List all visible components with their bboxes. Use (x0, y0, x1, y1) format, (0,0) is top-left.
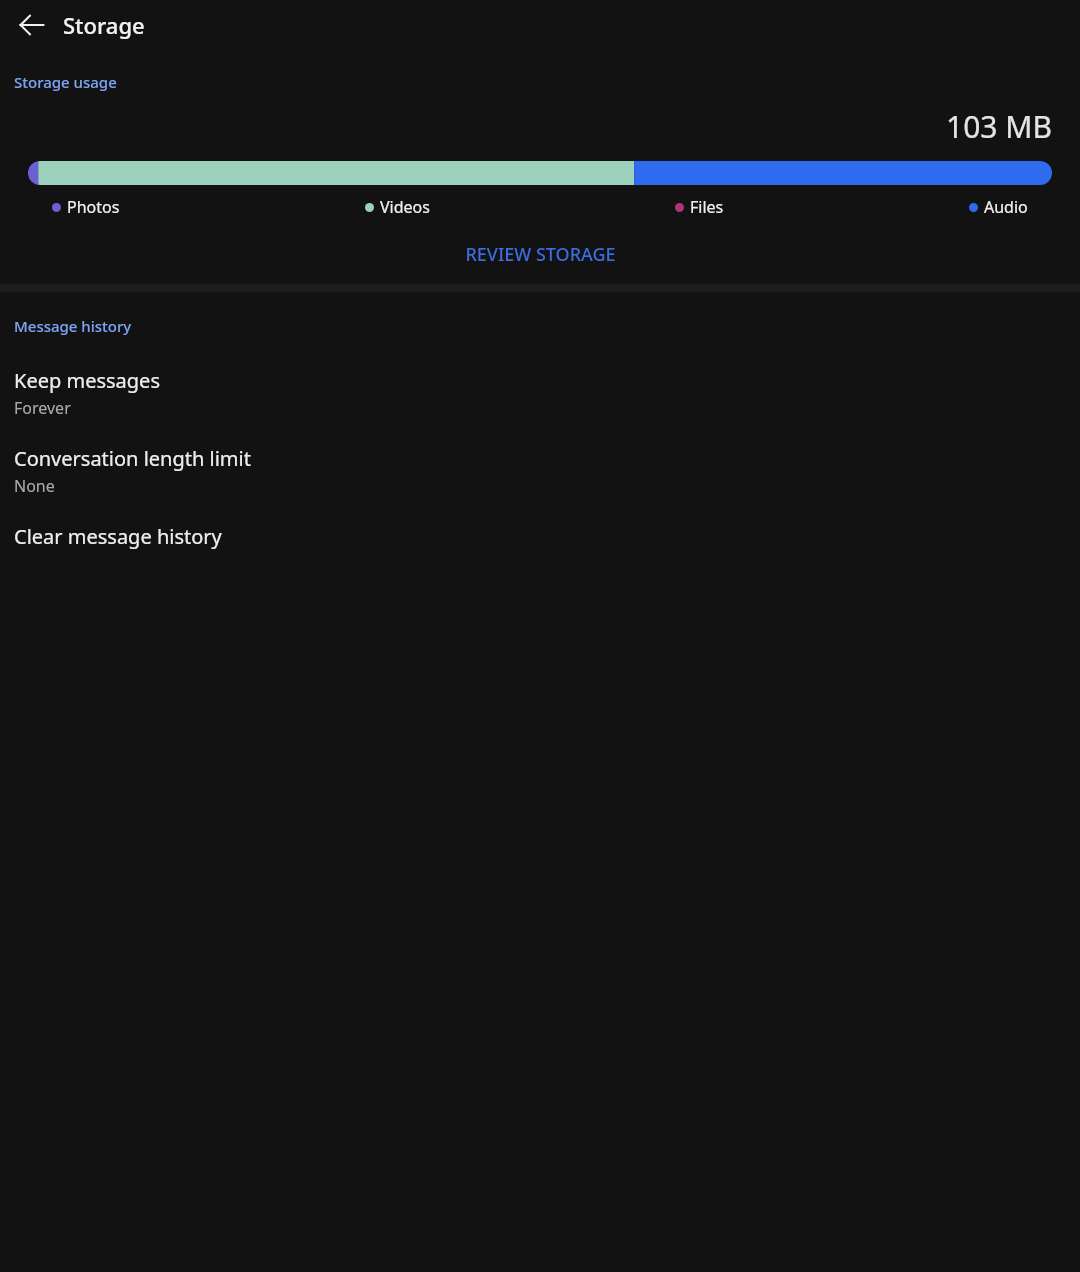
staticText: REVIEW STORAGE (465, 242, 616, 267)
staticText: Forever (14, 397, 71, 419)
staticText: Message history (14, 316, 132, 336)
staticText: Keep messages (14, 367, 160, 394)
staticText: Clear message history (14, 523, 222, 550)
staticText: Conversation length limit (14, 445, 251, 472)
staticText: Files (690, 196, 724, 218)
staticText: None (14, 475, 55, 497)
staticText: Photos (67, 196, 120, 218)
button[interactable]: Conversation length limit (0, 432, 1080, 510)
staticText: Storage (63, 10, 145, 40)
staticText: Audio (984, 196, 1028, 218)
button[interactable]: Clear message history (0, 510, 1080, 563)
staticText: 103 MB (946, 106, 1052, 147)
button[interactable]: Storage usage breakdown (28, 161, 1052, 185)
button[interactable]: REVIEW STORAGE (453, 236, 628, 273)
button[interactable]: Keep messages (0, 354, 1080, 432)
staticText: Videos (380, 196, 430, 218)
staticText: Storage usage (14, 72, 117, 92)
button[interactable]: Back (6, 0, 58, 49)
